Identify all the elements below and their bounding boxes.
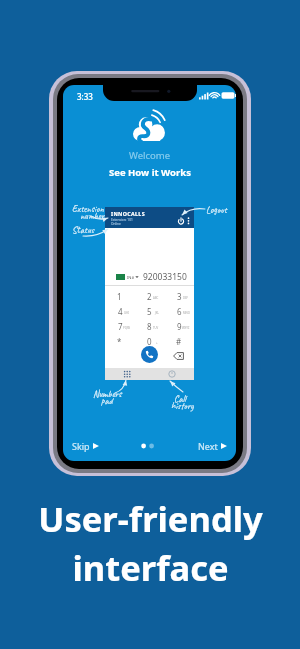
staticText: IN# xyxy=(127,275,134,280)
button[interactable]: 7 xyxy=(105,319,134,334)
staticText: 5 xyxy=(147,306,152,317)
staticText: ABC xyxy=(153,296,159,300)
staticText: WXYZ xyxy=(182,326,190,330)
staticText: Online xyxy=(111,222,121,226)
button[interactable]: Skip xyxy=(72,440,99,452)
staticText: Status xyxy=(72,224,95,236)
staticText: 2 xyxy=(147,291,152,302)
button[interactable]: # xyxy=(164,334,194,349)
staticText: 920033150 xyxy=(143,271,187,283)
button[interactable]: 4 xyxy=(105,304,134,319)
staticText: Logout xyxy=(206,204,227,216)
staticText: User-friendly xyxy=(38,495,263,542)
staticText: INNOCALLS xyxy=(111,210,145,217)
staticText: 1 xyxy=(117,291,122,302)
button[interactable]: 2 xyxy=(134,289,164,304)
staticText: 4 xyxy=(118,306,123,317)
button[interactable]: More options xyxy=(185,217,192,225)
button[interactable]: Logout xyxy=(176,216,186,226)
staticText: 0 xyxy=(147,336,152,347)
staticText: 8 xyxy=(147,321,152,332)
staticText: Next xyxy=(198,440,218,452)
button[interactable]: Next xyxy=(198,440,227,452)
staticText: DEF xyxy=(183,296,189,300)
button[interactable]: 3 xyxy=(164,289,194,304)
button[interactable]: Backspace xyxy=(173,352,184,360)
button[interactable]: 0 xyxy=(134,334,164,349)
button[interactable]: 9 xyxy=(164,319,194,334)
other: Numbers pad xyxy=(123,370,131,378)
staticText: 7 xyxy=(118,321,123,332)
button[interactable]: 8 xyxy=(134,319,164,334)
staticText: Welcome xyxy=(129,149,171,162)
staticText: See How it Works xyxy=(109,166,191,179)
staticText: JKL xyxy=(155,311,159,315)
staticText: TUV xyxy=(153,326,159,330)
staticText: Numbers xyxy=(93,388,122,400)
staticText: # xyxy=(176,336,182,347)
staticText: PQRS xyxy=(123,326,131,330)
button[interactable]: 5 xyxy=(134,304,164,319)
staticText: Call xyxy=(174,393,186,405)
button[interactable]: Numbers pad xyxy=(105,368,149,380)
other: Call history xyxy=(168,370,176,378)
staticText: + xyxy=(156,341,158,345)
staticText: 3 xyxy=(177,291,182,302)
button[interactable]: 6 xyxy=(164,304,194,319)
button[interactable]: 1 xyxy=(105,289,134,304)
staticText: * xyxy=(117,336,122,347)
staticText: 6 xyxy=(177,306,182,317)
button[interactable]: * xyxy=(105,334,134,349)
staticText: interface xyxy=(72,544,229,591)
staticText: Extension: 101 xyxy=(111,218,133,222)
staticText: GHI xyxy=(124,311,130,315)
staticText: MNO xyxy=(183,311,190,315)
button[interactable]: Call history xyxy=(149,368,194,380)
staticText: Extension xyxy=(72,203,104,215)
staticText: number xyxy=(80,210,105,222)
staticText: 9 xyxy=(177,321,182,332)
staticText: pad xyxy=(101,395,113,407)
staticText: 3:33 xyxy=(77,91,93,102)
button[interactable]: Call xyxy=(141,346,158,363)
staticText: Skip xyxy=(72,440,90,452)
staticText: history xyxy=(171,400,194,412)
